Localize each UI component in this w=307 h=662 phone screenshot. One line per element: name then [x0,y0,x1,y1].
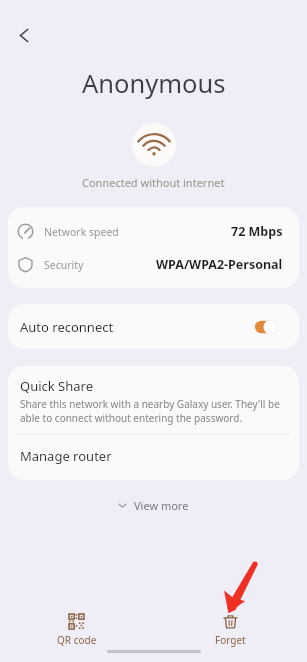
button[interactable]: Forget [153,614,307,654]
staticText: Network speed [44,225,119,239]
button[interactable]: Back [6,17,42,53]
button[interactable]: Manage router [8,435,299,477]
button[interactable]: View more [108,493,199,518]
staticText: Quick Share [20,377,94,395]
staticText: Auto reconnect [20,318,114,336]
button[interactable]: Quick Share [8,366,299,434]
button[interactable]: QR code [0,614,153,654]
staticText: View more [134,498,189,513]
staticText: QR code [57,633,97,647]
staticText: Forget [215,633,246,647]
staticText: Manage router [20,447,112,465]
button[interactable]: Security [8,248,299,281]
staticText: 72 Mbps [231,223,283,240]
staticText: Connected without internet [82,175,225,190]
staticText: Security [44,258,84,272]
staticText: Anonymous [82,66,226,101]
staticText: Share this network with a nearby Galaxy … [20,397,285,425]
staticText: WPA/WPA2-Personal [156,256,283,273]
button[interactable]: Network speed [8,215,299,248]
button[interactable]: Auto reconnect [8,304,299,349]
